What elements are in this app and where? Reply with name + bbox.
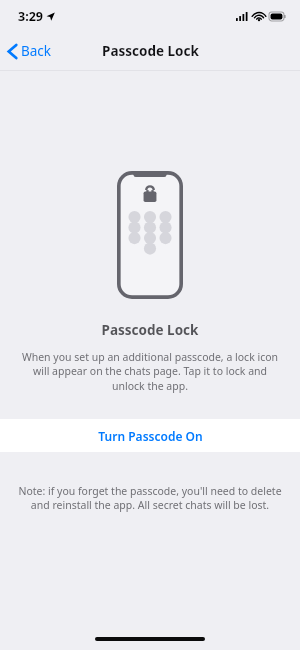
staticText: When you set up an additional passcode, … (16, 350, 284, 393)
staticText: Passcode Lock (0, 321, 300, 339)
staticText: Turn Passcode On (98, 428, 203, 444)
staticText: 3:29 (18, 8, 43, 25)
button[interactable]: Back (0, 38, 62, 64)
other: Back (8, 44, 17, 59)
staticText: Passcode Lock (102, 42, 199, 60)
button[interactable]: Turn Passcode On (0, 419, 300, 452)
staticText: Note: if you forget the passcode, you'll… (18, 484, 282, 512)
staticText: Back (21, 42, 52, 60)
